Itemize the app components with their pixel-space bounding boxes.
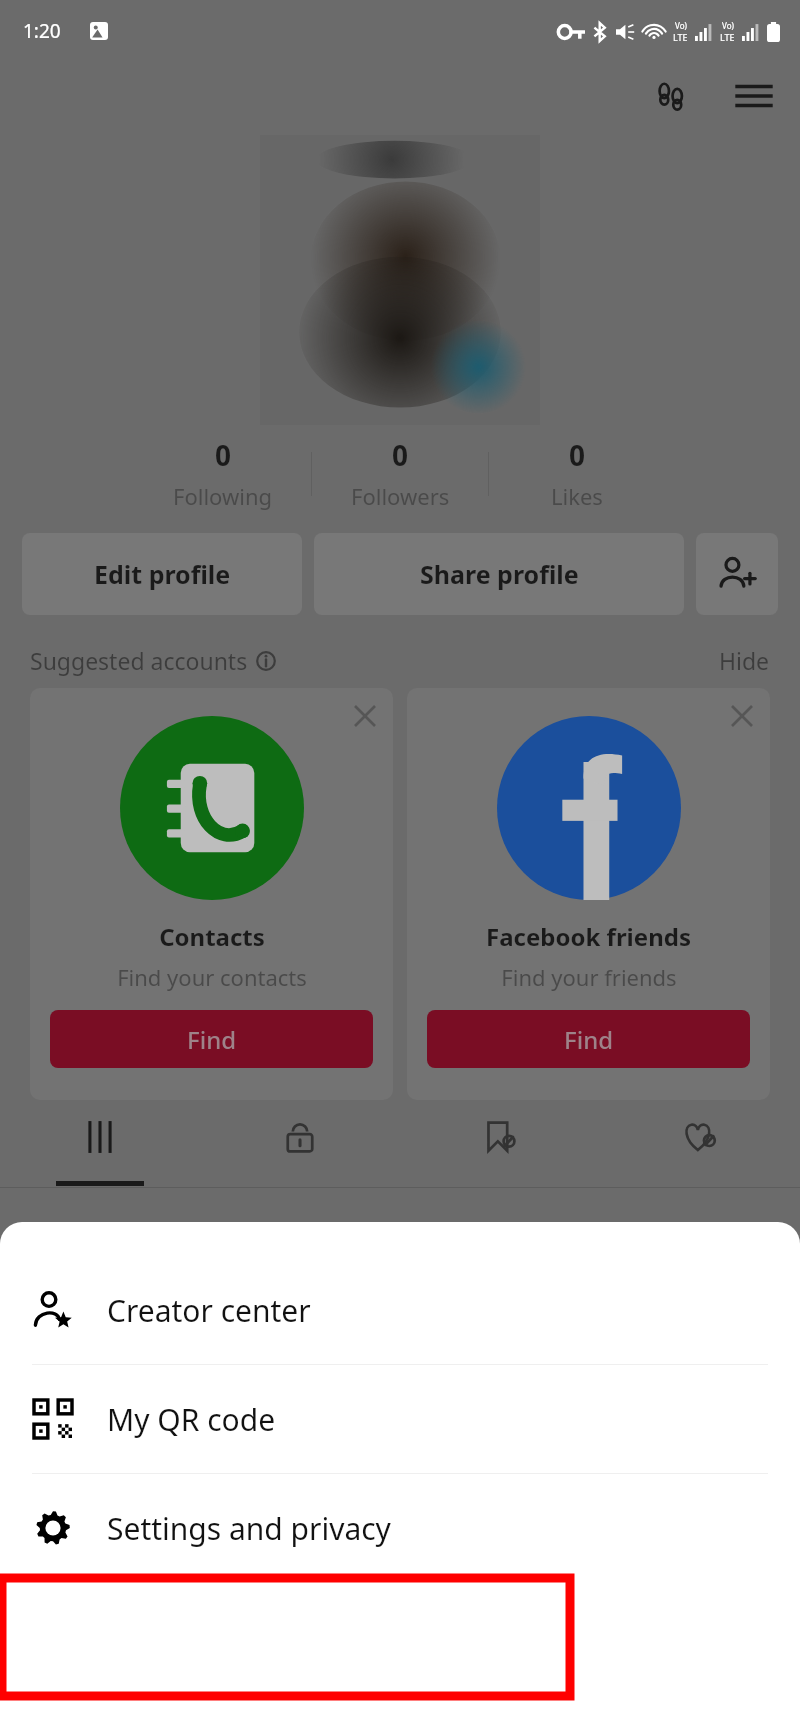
button[interactable]: Find bbox=[427, 1010, 750, 1068]
button[interactable]: Menu bbox=[730, 72, 778, 120]
button[interactable]: Saved bbox=[400, 1100, 600, 1188]
staticText: Settings and privacy bbox=[107, 1508, 391, 1549]
button[interactable]: Posts bbox=[0, 1100, 200, 1188]
button[interactable]: Suggested accounts bbox=[30, 645, 276, 676]
button[interactable]: Dismiss bbox=[345, 696, 385, 736]
staticText: 0 bbox=[215, 436, 232, 474]
staticText: Find bbox=[187, 1023, 237, 1056]
button[interactable]: My QR code bbox=[0, 1365, 800, 1473]
button[interactable]: Find bbox=[50, 1010, 373, 1068]
staticText: Vo) bbox=[722, 20, 734, 31]
staticText: LTE bbox=[673, 31, 688, 43]
staticText: My QR code bbox=[107, 1399, 276, 1440]
staticText: Find bbox=[564, 1023, 614, 1056]
button[interactable]: Dismiss bbox=[722, 696, 762, 736]
button[interactable]: 0 bbox=[489, 436, 665, 511]
staticText: Likes bbox=[551, 481, 603, 511]
staticText: Hide bbox=[719, 645, 770, 676]
staticText: 1:20 bbox=[23, 18, 61, 44]
button[interactable]: Find friends bbox=[696, 533, 778, 615]
staticText: Find your friends bbox=[501, 962, 677, 992]
button[interactable]: Hide bbox=[719, 645, 770, 676]
button[interactable]: Dismiss bbox=[30, 688, 393, 1100]
button[interactable]: Creator center bbox=[0, 1256, 800, 1364]
button[interactable]: Liked bbox=[600, 1100, 800, 1188]
staticText: Contacts bbox=[159, 920, 265, 953]
button[interactable]: Share profile bbox=[314, 533, 684, 615]
staticText: LTE bbox=[720, 31, 735, 43]
button[interactable]: Dismiss bbox=[407, 688, 770, 1100]
button[interactable]: 0 bbox=[312, 436, 488, 511]
button[interactable]: Settings and privacy bbox=[0, 1474, 800, 1582]
button[interactable]: Private bbox=[200, 1100, 400, 1188]
staticText: Share profile bbox=[420, 557, 579, 591]
staticText: Followers bbox=[351, 481, 450, 511]
staticText: Vo) bbox=[675, 20, 687, 31]
button[interactable]: 0 bbox=[135, 436, 311, 511]
staticText: Facebook friends bbox=[486, 920, 691, 953]
staticText: 0 bbox=[392, 436, 409, 474]
staticText: Following bbox=[173, 481, 273, 511]
staticText: Find your contacts bbox=[117, 962, 307, 992]
staticText: 0 bbox=[569, 436, 586, 474]
staticText: Creator center bbox=[107, 1290, 311, 1331]
button[interactable]: Activity bbox=[650, 72, 698, 120]
staticText: Edit profile bbox=[94, 557, 231, 591]
staticText: Suggested accounts bbox=[30, 645, 248, 676]
button[interactable]: Edit profile bbox=[22, 533, 302, 615]
